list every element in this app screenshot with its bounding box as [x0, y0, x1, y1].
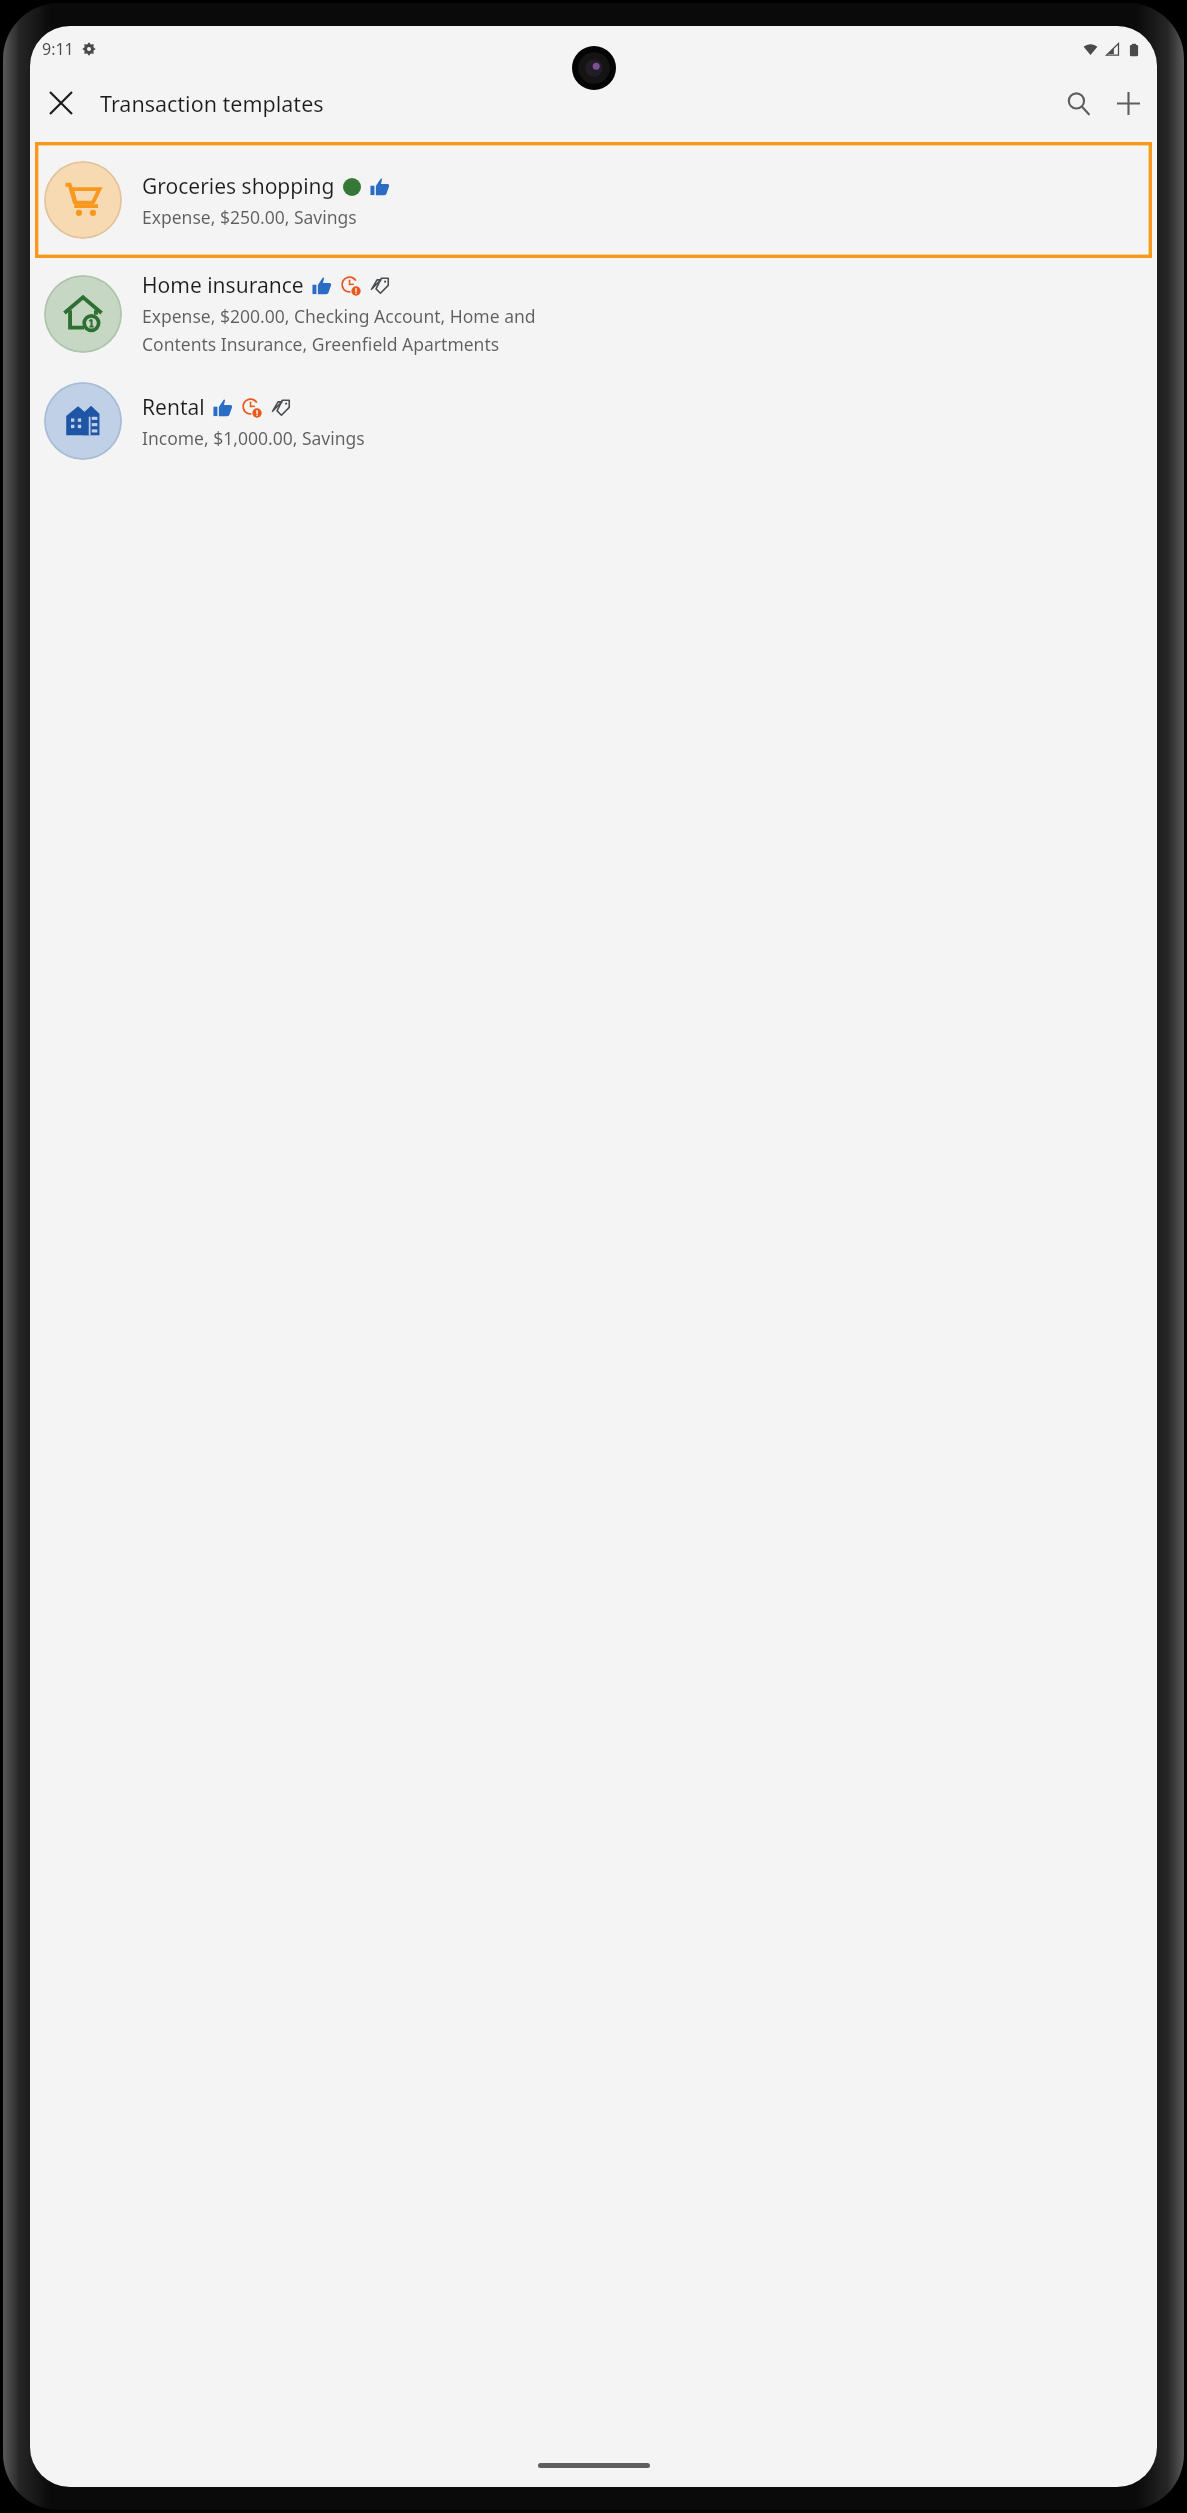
button[interactable]: Search	[1053, 78, 1103, 128]
staticText: Groceries shopping	[142, 172, 335, 201]
staticText: Income, $1,000.00, Savings	[142, 426, 365, 450]
staticText: Home insurance	[142, 271, 304, 300]
button[interactable]: Add	[1103, 78, 1153, 128]
button[interactable]: Home insurance	[35, 258, 1152, 369]
staticText: 9:11	[42, 38, 74, 60]
button[interactable]: Groceries shopping	[35, 142, 1152, 258]
staticText: Contents Insurance, Greenfield Apartment…	[142, 332, 500, 356]
staticText: Rental	[142, 393, 205, 422]
button[interactable]: Rental	[35, 369, 1152, 473]
staticText: Expense, $250.00, Savings	[142, 205, 357, 229]
button[interactable]: Close	[36, 78, 86, 128]
staticText: Expense, $200.00, Checking Account, Home…	[142, 304, 536, 328]
staticText: Transaction templates	[100, 89, 324, 118]
